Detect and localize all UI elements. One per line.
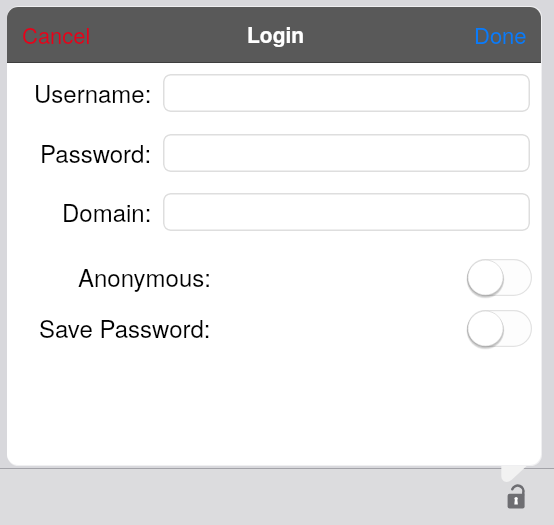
button[interactable]: Anonymous: [467, 259, 532, 296]
staticText: Domain: [62, 194, 152, 228]
staticText: Save Password: [39, 310, 211, 344]
button[interactable]: Domain: [163, 193, 530, 231]
staticText: Username: [34, 75, 152, 109]
staticText: Cancel [22, 19, 91, 51]
button[interactable]: Username: [163, 74, 530, 112]
button[interactable]: Password: [163, 134, 530, 172]
staticText: Done [474, 19, 527, 51]
staticText: Login [247, 19, 305, 49]
button[interactable]: Cancel [7, 7, 105, 63]
staticText: Password: [40, 135, 152, 169]
button[interactable]: Done [460, 7, 541, 63]
button[interactable]: Save Password: [467, 310, 532, 347]
button[interactable]: Unlocked [506, 486, 526, 510]
staticText: Anonymous: [78, 259, 211, 293]
